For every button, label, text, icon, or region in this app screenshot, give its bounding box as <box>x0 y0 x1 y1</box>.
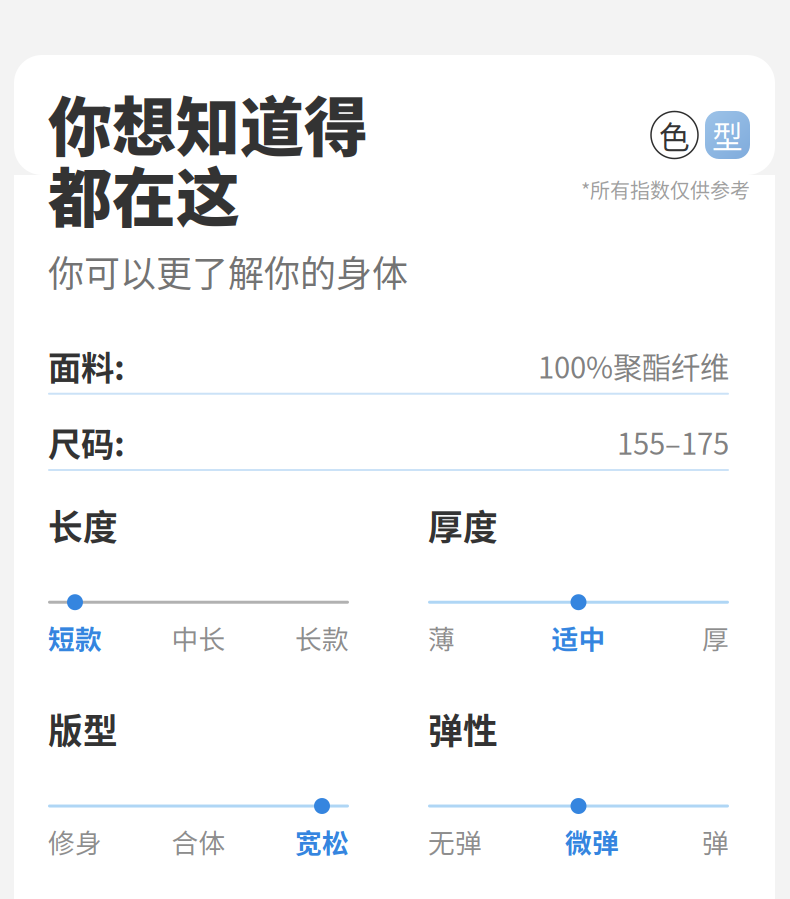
staticText: 面料: <box>48 341 125 390</box>
staticText: 宽松 <box>295 822 349 861</box>
staticText: 厚 <box>702 618 729 657</box>
staticText: 修身 <box>48 822 102 861</box>
button[interactable]: 版型 <box>705 111 750 159</box>
staticText: 无弹 <box>428 822 482 861</box>
staticText: 中长 <box>171 618 225 657</box>
staticText: 合体 <box>171 822 225 861</box>
staticText: 宽松 <box>295 787 349 825</box>
staticText: 厚度 <box>428 500 498 550</box>
staticText: 合体 <box>171 787 225 825</box>
staticText: 尺码: <box>48 418 125 466</box>
staticText: 版型 <box>48 704 118 754</box>
staticText: 薄 <box>428 618 455 657</box>
staticText: 型 <box>712 113 743 157</box>
staticText: 你想知道得 都在这 <box>48 76 368 239</box>
staticText: 长款 <box>295 583 349 621</box>
staticText: 长款 <box>295 618 349 657</box>
staticText: 短款 <box>48 583 102 621</box>
staticText: *所有指数仅供参考 <box>581 175 750 204</box>
staticText: 短款 <box>48 618 102 657</box>
staticText: 155–175 <box>617 421 729 463</box>
staticText: 弹 <box>702 822 729 861</box>
staticText: 弹性 <box>428 704 498 754</box>
staticText: 色 <box>659 113 690 157</box>
staticText: 100%聚酯纤维 <box>538 344 729 387</box>
button[interactable]: 颜色 <box>651 111 698 158</box>
staticText: 适中 <box>551 618 605 657</box>
staticText: 中长 <box>171 583 225 621</box>
staticText: 微弹 <box>565 822 619 861</box>
staticText: 你可以更了解你的身体 <box>48 245 408 297</box>
staticText: 修身 <box>48 787 102 825</box>
staticText: 长度 <box>48 500 118 550</box>
